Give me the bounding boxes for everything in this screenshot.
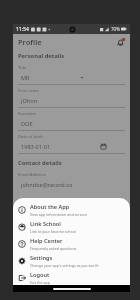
staticText: 1983-01-01	[21, 143, 51, 151]
staticText: MR	[21, 74, 30, 82]
button[interactable]: First name	[18, 85, 125, 108]
staticText: Title	[18, 65, 27, 71]
staticText: Change your app's settings as you see fi…	[30, 263, 99, 268]
button[interactable]: Title	[18, 62, 125, 85]
staticText: 11:54	[16, 26, 29, 33]
staticText: Profile	[18, 37, 42, 47]
staticText: Exit the app	[30, 280, 50, 285]
button[interactable]: Settings	[13, 252, 130, 269]
staticText: Email Address	[18, 172, 46, 178]
staticText: View app information and version	[30, 212, 87, 217]
staticText: Link to your favorite school	[30, 229, 76, 234]
staticText: Frequently asked questions	[30, 246, 77, 251]
staticText: johndoe@record.com	[21, 181, 73, 189]
button[interactable]: Link School	[13, 218, 130, 235]
staticText: Surname	[18, 111, 36, 117]
staticText: Personal details	[18, 52, 65, 60]
staticText: Help Center	[30, 237, 63, 245]
staticText: First name	[18, 88, 39, 94]
button[interactable]: Logout	[13, 269, 130, 286]
button[interactable]: Help Center	[13, 235, 130, 252]
staticText: Contact details	[18, 159, 62, 167]
button[interactable]: Date of birth	[18, 131, 125, 154]
staticText: Link School	[30, 220, 61, 228]
button[interactable]: About the App	[13, 201, 130, 218]
staticText: Settings	[30, 254, 53, 262]
staticText: About the App	[30, 203, 70, 211]
button[interactable]: Email Address	[18, 169, 125, 191]
staticText: 70%	[111, 26, 120, 32]
staticText: Date of birth	[18, 134, 43, 140]
button[interactable]: Notifications	[114, 36, 126, 48]
staticText: Logout	[30, 271, 50, 279]
button[interactable]: Surname	[18, 108, 125, 131]
staticText: DOE	[21, 120, 33, 128]
staticText: jOhnn	[21, 97, 38, 105]
